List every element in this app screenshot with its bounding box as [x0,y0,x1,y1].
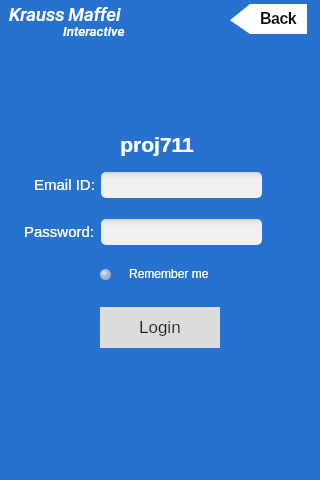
button[interactable]: Remember me [96,263,212,287]
button[interactable]: Back [230,4,307,34]
staticText: Password: [24,223,95,240]
staticText: Email ID: [34,176,95,193]
button[interactable]: Email ID field [101,172,262,198]
button[interactable]: Login [100,307,220,348]
staticText: proj711 [0,133,317,156]
staticText: Login [139,318,181,337]
staticText: Back [260,10,297,28]
button[interactable]: Password field [101,219,262,245]
staticText: Krauss Maffei [9,4,121,26]
staticText: Remember me [129,267,209,280]
staticText: Interactive [63,24,125,40]
